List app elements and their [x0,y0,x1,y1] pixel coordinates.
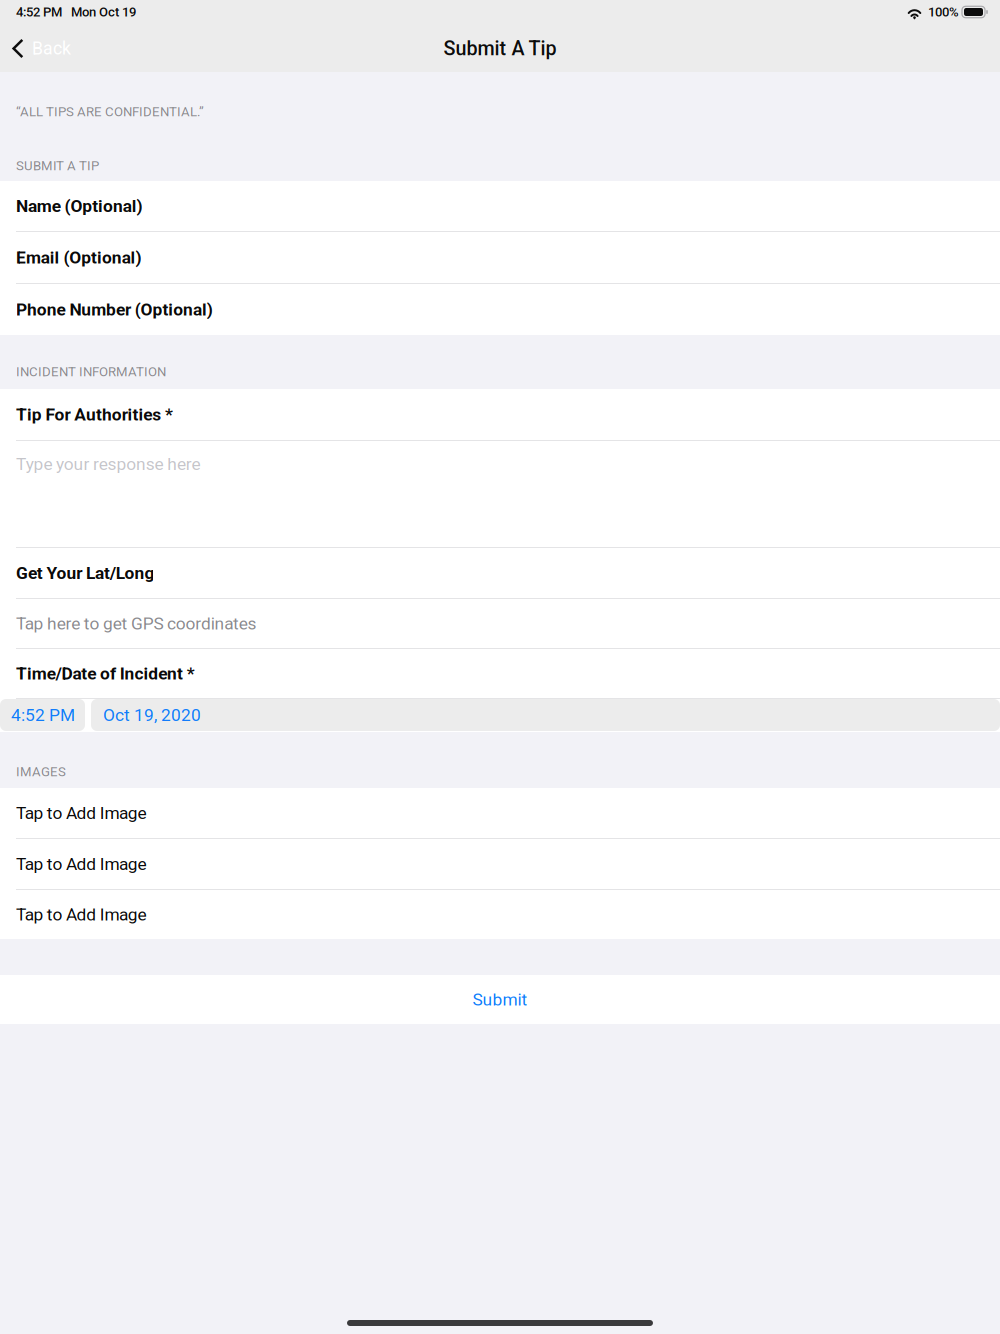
staticText: “ALL TIPS ARE CONFIDENTIAL.” [16,104,204,119]
button[interactable]: Time/Date of Incident * [0,649,1000,698]
staticText: Mon Oct 19 [62,4,136,20]
button[interactable]: Tap to Add Image [0,788,1000,838]
button[interactable]: Tap here to get GPS coordinates [0,599,1000,648]
staticText: Submit [472,989,527,1010]
staticText: Time/Date of Incident * [16,663,195,684]
staticText: Get Your Lat/Long [16,563,154,583]
staticText: Tap to Add Image [16,803,146,823]
button[interactable]: Type your response here [0,441,1000,547]
button[interactable]: 4:52 PM [0,699,85,731]
staticText: Email (Optional) [16,247,141,268]
staticText: Oct 19, 2020 [103,705,201,725]
button[interactable]: Tip For Authorities * [0,389,1000,440]
button[interactable]: Tap to Add Image [0,839,1000,889]
staticText: Tip For Authorities * [16,404,173,425]
staticText: IMAGES [16,764,66,779]
button[interactable]: Phone Number (Optional) [0,284,1000,335]
button[interactable]: Submit [0,975,1000,1024]
staticText: Tap here to get GPS coordinates [16,613,256,634]
staticText: SUBMIT A TIP [16,158,99,173]
staticText: Tap to Add Image [16,854,146,874]
staticText: Phone Number (Optional) [16,299,213,320]
staticText: Tap to Add Image [16,904,146,925]
staticText: 4:52 PM [16,4,62,20]
staticText: Type your response here [16,454,201,474]
button[interactable]: Back [0,28,83,69]
staticText: 4:52 PM [11,705,75,725]
staticText: Submit A Tip [443,37,556,60]
button[interactable]: Name (Optional) [0,181,1000,231]
staticText: Back [32,38,71,59]
button[interactable]: Get Your Lat/Long [0,548,1000,598]
staticText: 100% [922,4,962,20]
button[interactable]: Oct 19, 2020 [91,699,1000,731]
button[interactable]: Email (Optional) [0,232,1000,283]
staticText: INCIDENT INFORMATION [16,364,166,379]
button[interactable]: Tap to Add Image [0,890,1000,939]
staticText: Name (Optional) [16,196,143,216]
